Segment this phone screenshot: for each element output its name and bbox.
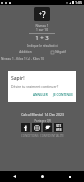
staticText: 1 + 3 <box>35 34 49 42</box>
staticText: SITE <box>56 124 62 128</box>
staticText: CONDITIONS CONFIDENTIALITE <box>21 134 64 138</box>
staticText: 1 sur 10 <box>36 28 48 32</box>
staticText: JE CONTINUE <box>53 93 73 97</box>
button[interactable]: Facebook <box>21 123 30 132</box>
staticText: 1:05 <box>75 0 83 5</box>
button[interactable]: Addition <box>19 50 32 54</box>
button[interactable]: Recents <box>56 171 84 182</box>
staticText: Sapir! <box>11 75 25 82</box>
button[interactable]: Home <box>28 171 56 182</box>
staticText: ANNULER <box>33 93 48 97</box>
staticText: Indique le résultat ici <box>27 44 58 48</box>
button[interactable]: JE CONTINUE <box>52 92 74 98</box>
staticText: Partagez QR <box>34 119 51 123</box>
staticText: WEB <box>56 128 62 131</box>
staticText: Calcul Mental 14 Dec 2023 <box>21 112 64 117</box>
button[interactable]: Back <box>0 171 28 182</box>
button[interactable]: Négatif <box>51 50 66 54</box>
button[interactable]: Logo <box>34 7 50 21</box>
button[interactable]: ANNULER <box>32 92 49 98</box>
button[interactable]: Instagram <box>32 123 41 132</box>
staticText: Niveau 1 - Kilos 1 (+) - Kilos 10 <box>1 57 84 61</box>
staticText: ? <box>42 9 46 20</box>
staticText: Négatif <box>55 50 66 54</box>
button[interactable]: Site web <box>54 123 63 132</box>
staticText: Addition <box>19 50 32 54</box>
staticText: Désire tu vraiment continuer? <box>11 84 59 89</box>
staticText: Niveau 1 <box>35 24 49 28</box>
button[interactable]: Twitter <box>43 123 52 132</box>
staticText: + <box>39 11 42 18</box>
